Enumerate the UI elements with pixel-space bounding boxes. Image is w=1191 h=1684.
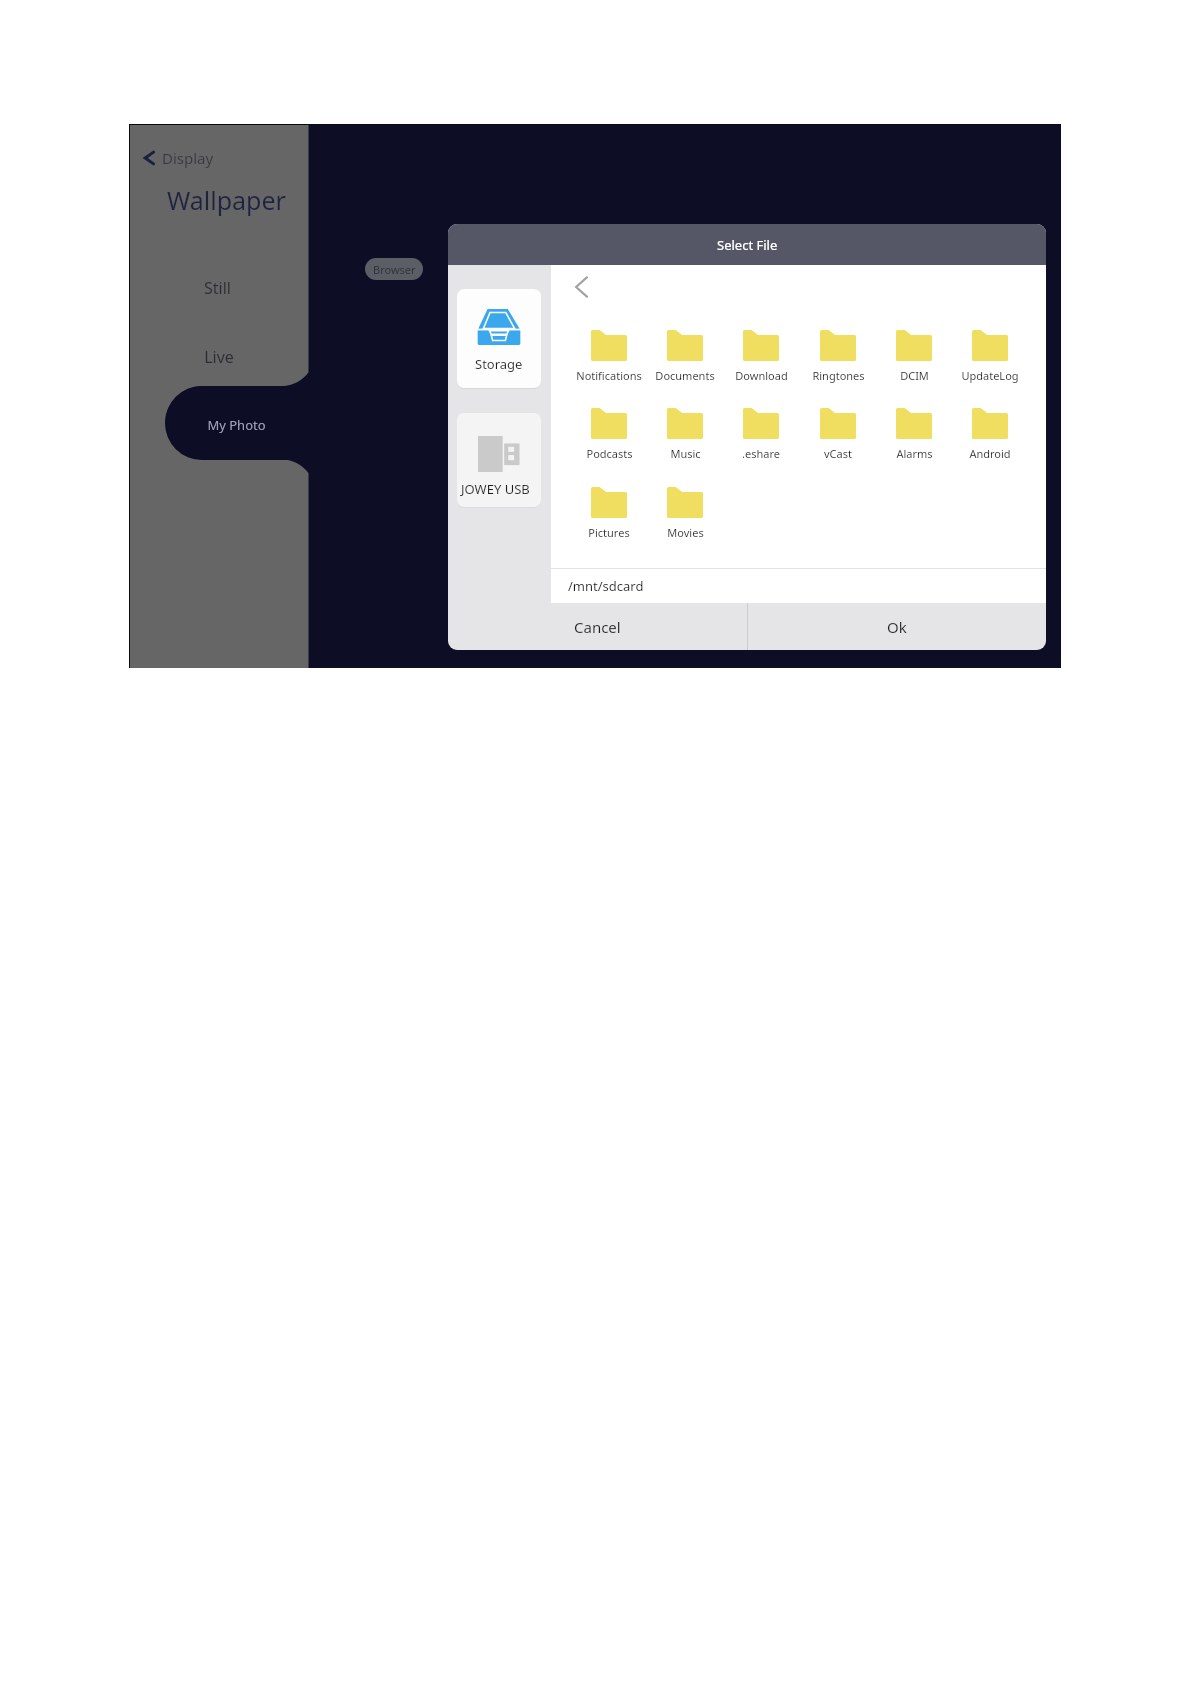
staticText: DCIM (900, 368, 929, 383)
staticText: Live (204, 346, 234, 368)
button[interactable]: My Photo (191, 403, 281, 447)
button[interactable]: Cancel (448, 603, 747, 650)
staticText: Notifications (576, 368, 642, 383)
button[interactable]: Download (723, 330, 799, 383)
staticText: Ringtones (812, 368, 865, 383)
button[interactable]: Browser (365, 258, 423, 280)
staticText: Still (204, 277, 231, 299)
button[interactable]: Documents (647, 330, 723, 383)
staticText: My Photo (207, 416, 266, 434)
staticText: Browser (373, 262, 416, 277)
staticText: Wallpaper (167, 183, 286, 217)
staticText: /mnt/sdcard (568, 577, 644, 595)
button[interactable]: Movies (647, 487, 723, 540)
staticText: Pictures (588, 525, 630, 540)
button[interactable]: Alarms (876, 408, 952, 461)
staticText: Display (162, 148, 214, 168)
staticText: UpdateLog (961, 368, 1019, 383)
button[interactable] (165, 386, 310, 460)
staticText: Documents (655, 368, 715, 383)
button[interactable]: Live (174, 335, 264, 379)
button[interactable]: .eshare (723, 408, 799, 461)
button[interactable]: Pictures (571, 487, 647, 540)
button[interactable]: Music (647, 408, 723, 461)
button[interactable]: Ok (748, 603, 1046, 650)
staticText: Cancel (574, 617, 621, 637)
button[interactable]: vCast (800, 408, 876, 461)
button[interactable]: UpdateLog (952, 330, 1028, 383)
staticText: Music (670, 446, 701, 461)
button[interactable]: Android (952, 408, 1028, 461)
staticText: Movies (667, 525, 704, 540)
button[interactable]: Notifications (571, 330, 647, 383)
staticText: Alarms (896, 446, 933, 461)
staticText: Download (735, 368, 788, 383)
staticText: Podcasts (586, 446, 633, 461)
staticText: JOWEY USB (461, 480, 530, 498)
button[interactable]: Back (574, 276, 588, 298)
staticText: Ok (887, 617, 907, 637)
button[interactable]: Ringtones (800, 330, 876, 383)
button[interactable]: Display (143, 148, 214, 168)
button[interactable]: JOWEY USB (457, 413, 541, 507)
button[interactable]: Podcasts (571, 408, 647, 461)
staticText: vCast (824, 446, 852, 461)
staticText: Select File (717, 236, 778, 254)
staticText: .eshare (742, 446, 780, 461)
staticText: Storage (475, 355, 523, 373)
staticText: Android (969, 446, 1011, 461)
button[interactable]: Still (172, 266, 262, 310)
button[interactable]: Storage (457, 289, 541, 388)
button[interactable]: DCIM (876, 330, 952, 383)
